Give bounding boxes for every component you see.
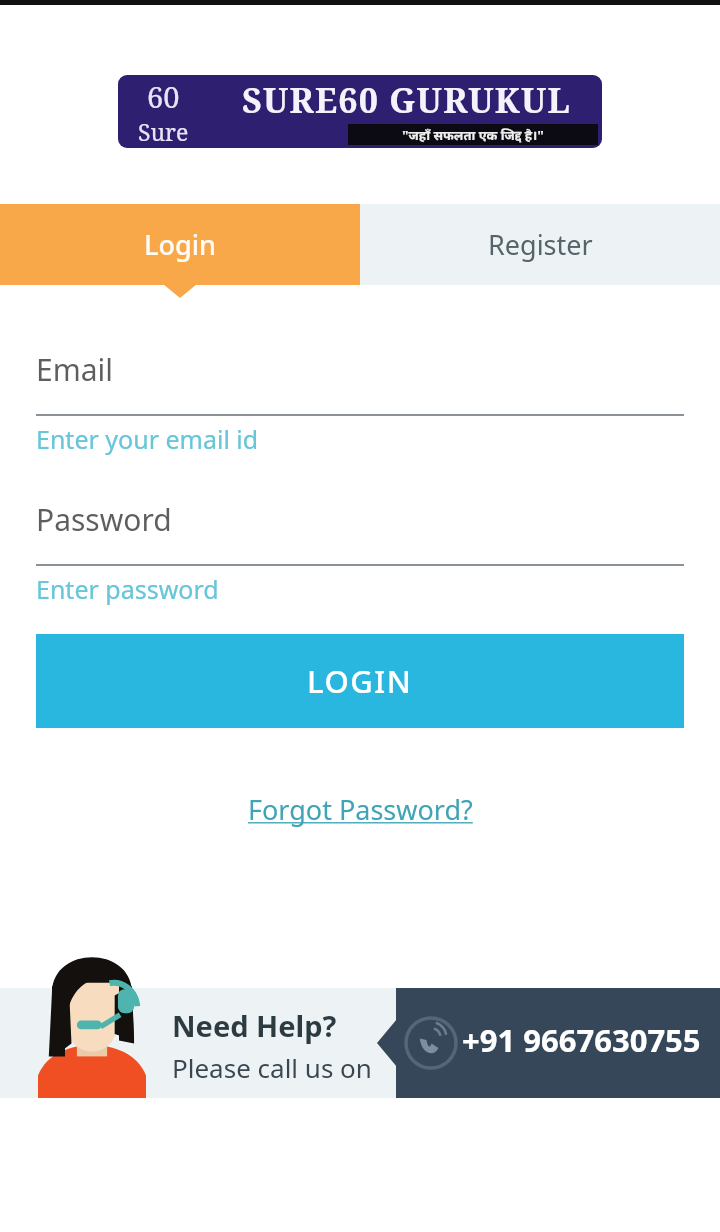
staticText: Sure bbox=[138, 116, 189, 147]
staticText: Register bbox=[488, 226, 593, 263]
button[interactable]: LOGIN bbox=[36, 634, 684, 728]
button[interactable]: Login bbox=[0, 204, 360, 285]
staticText: Please call us on bbox=[172, 1050, 372, 1085]
button[interactable]: Call +91 9667630755 bbox=[402, 1014, 460, 1072]
staticText: Enter your email id bbox=[36, 422, 259, 456]
button[interactable]: +91 9667630755 bbox=[462, 1010, 701, 1070]
staticText: Forgot Password? bbox=[248, 791, 473, 828]
staticText: Enter password bbox=[36, 572, 219, 606]
staticText: Password bbox=[36, 499, 172, 540]
button[interactable]: Email bbox=[36, 349, 684, 419]
staticText: Login bbox=[144, 226, 216, 263]
staticText: "जहाँ सफलता एक जिद्द है।" bbox=[402, 126, 544, 144]
button[interactable]: Register bbox=[360, 204, 720, 285]
staticText: LOGIN bbox=[307, 660, 413, 702]
staticText: Need Help? bbox=[172, 1006, 337, 1045]
staticText: Email bbox=[36, 349, 114, 390]
staticText: SURE60 GURUKUL bbox=[242, 77, 571, 123]
staticText: +91 9667630755 bbox=[462, 1019, 701, 1061]
button[interactable]: Forgot Password? bbox=[236, 785, 484, 833]
button[interactable]: Password bbox=[36, 499, 684, 569]
staticText: 60 bbox=[147, 77, 180, 116]
